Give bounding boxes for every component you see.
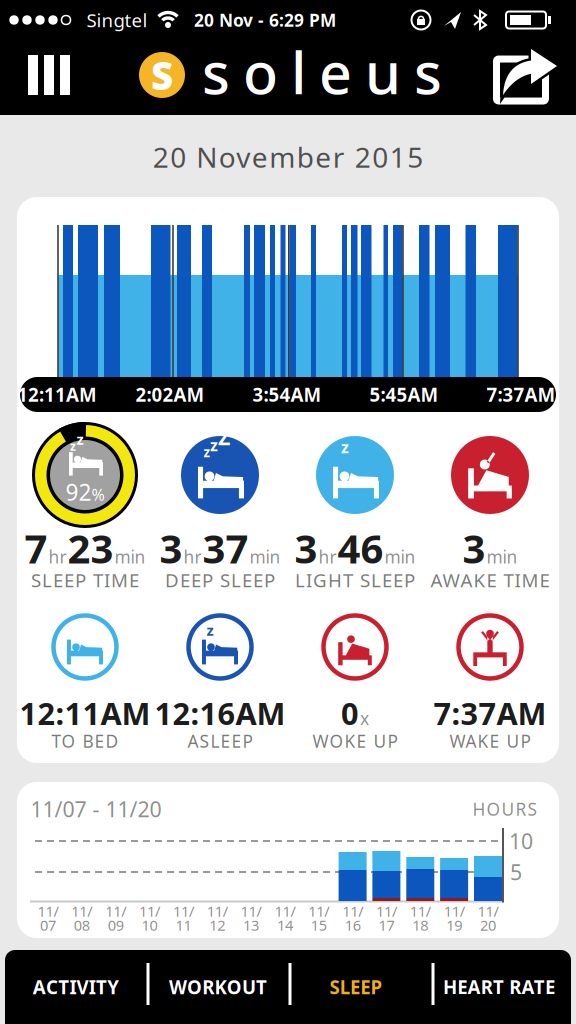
staticText: WOKE UP [312,729,397,752]
staticText: 11/ [444,901,465,921]
staticText: SLEEP [330,975,382,999]
staticText: 11/ [105,901,126,921]
staticText: 11/07 - 11/20 [30,795,161,823]
staticText: 3 [294,521,317,574]
button[interactable]: Share [489,43,559,107]
staticText: 11/ [241,901,262,921]
staticText: u [365,34,401,110]
staticText: 14 [277,915,293,935]
staticText: 23 [67,521,113,574]
staticText: hr [183,545,201,568]
staticText: z [76,429,83,449]
staticText: 12 [209,915,225,935]
staticText: ASLEEP [187,729,252,752]
staticText: e [319,34,352,110]
staticText: 20 November 2015 [153,138,423,176]
staticText: HEART RATE [443,975,555,999]
staticText: 19 [446,915,462,935]
staticText: 11/ [376,901,397,921]
staticText: z [203,443,210,461]
staticText: min [486,545,517,568]
staticText: 37 [202,521,248,574]
staticText: 11/ [308,901,329,921]
staticText: 20 Nov - 6:29 PM [194,8,336,31]
staticText: LIGHT SLEEP [295,568,415,592]
staticText: 12:11AM [19,693,150,733]
staticText: 5 [510,858,522,886]
staticText: 09 [108,915,124,935]
staticText: 12:16AM [154,693,285,733]
staticText: 11/ [274,901,295,921]
staticText: z [341,436,349,458]
staticText: 18 [412,915,428,935]
staticText: 11/ [173,901,194,921]
staticText: l [291,34,306,110]
staticText: s [202,34,230,110]
staticText: WAKE UP [449,729,530,752]
staticText: SLEEP TIME [31,568,139,592]
staticText: 46 [337,521,383,574]
staticText: TO BED [51,729,118,752]
staticText: 10 [142,915,158,935]
staticText: 3 [159,521,182,574]
staticText: 92 [65,477,91,507]
staticText: 07 [40,915,56,935]
staticText: min [384,545,415,568]
staticText: 20 [480,915,496,935]
staticText: hr [48,545,66,568]
staticText: z [206,620,213,640]
staticText: 11/ [207,901,228,921]
staticText: 3:54AM [252,382,321,407]
staticText: 17 [378,915,394,935]
button[interactable]: HEART RATE [434,952,564,1022]
staticText: min [114,545,145,568]
staticText: 7:37AM [433,693,546,733]
staticText: AWAKE TIME [430,568,549,592]
staticText: 08 [74,915,90,935]
staticText: 15 [311,915,327,935]
staticText: WORKOUT [169,975,267,999]
staticText: x [360,707,369,730]
staticText: 11/ [410,901,431,921]
staticText: min [249,545,280,568]
button[interactable]: WORKOUT [153,952,283,1022]
staticText: o [243,34,278,110]
staticText: 11/ [139,901,160,921]
staticText: 7:37AM [486,382,555,407]
staticText: s [414,34,442,110]
staticText: z [210,434,218,456]
staticText: DEEP SLEEP [165,568,275,592]
staticText: % [91,484,104,505]
staticText: 12:11AM [17,382,97,407]
button[interactable]: Menu [20,47,78,103]
staticText: 10 [509,827,533,855]
staticText: 11/ [71,901,92,921]
staticText: 5:45AM [369,382,438,407]
staticText: hr [318,545,336,568]
staticText: 11 [175,915,191,935]
staticText: 2:02AM [135,382,204,407]
staticText: S [151,49,173,101]
staticText: 11/ [37,901,58,921]
staticText: ACTIVITY [33,975,119,999]
staticText: 7 [24,521,47,574]
staticText: HOURS [472,797,537,820]
button[interactable]: ACTIVITY [11,952,141,1022]
staticText: Singtel [86,8,147,32]
staticText: 11/ [342,901,363,921]
staticText: z [70,438,76,454]
staticText: 16 [345,915,361,935]
staticText: 3 [462,521,485,574]
staticText: 0 [341,693,359,733]
staticText: Z [218,423,230,451]
staticText: 11/ [478,901,499,921]
button[interactable]: SLEEP [291,952,421,1022]
staticText: 13 [243,915,259,935]
